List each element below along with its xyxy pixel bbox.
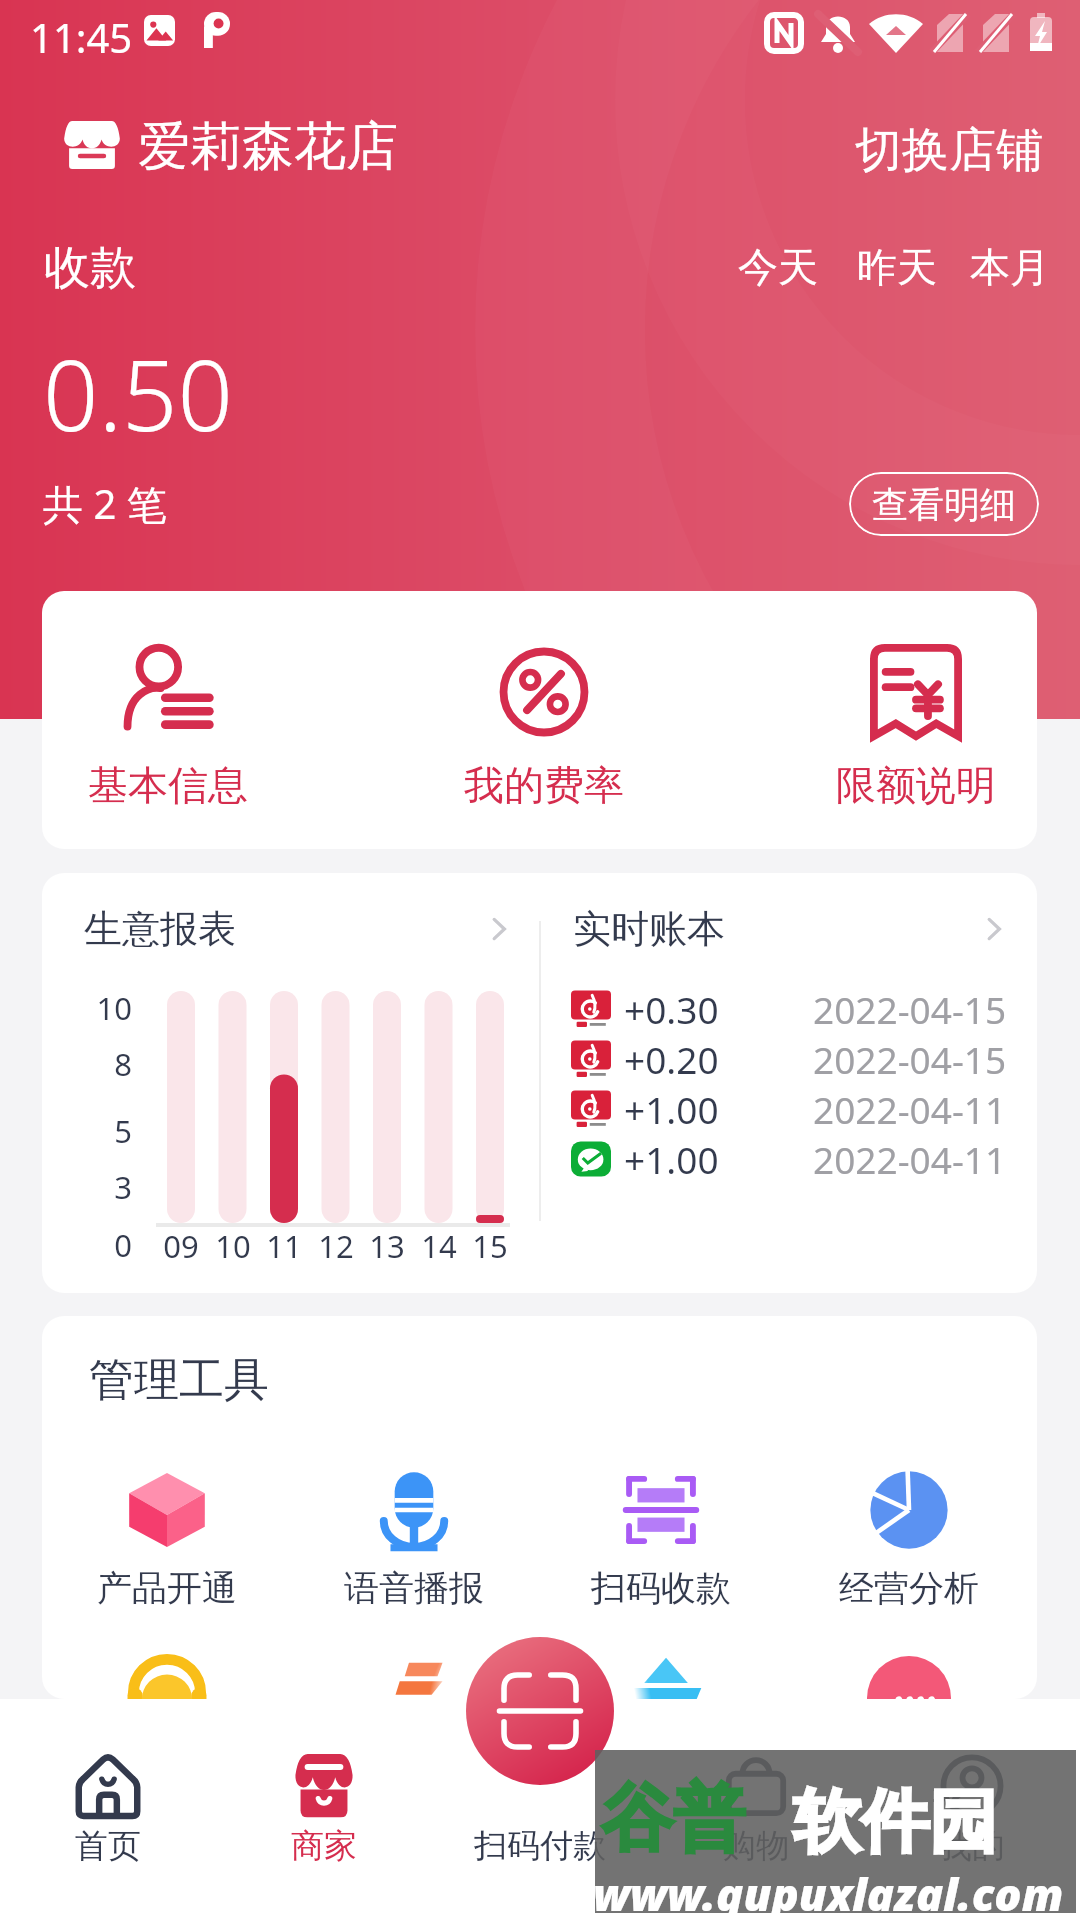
staticText: 首页 <box>75 1825 141 1867</box>
staticText: 8 <box>52 1043 132 1085</box>
staticText: 11:45 <box>30 10 133 64</box>
staticText: 本月 <box>970 242 1050 292</box>
staticText: 15 <box>450 1225 530 1267</box>
button[interactable] <box>67 1656 267 1699</box>
staticText: 管理工具 <box>89 1352 269 1409</box>
staticText: 谷普 <box>601 1774 745 1865</box>
staticText: 11 <box>244 1225 324 1267</box>
staticText: 爱莉森花店 <box>138 114 398 180</box>
staticText: 0.50 <box>43 327 233 459</box>
staticText: 10 <box>52 987 132 1029</box>
staticText: 产品开通 <box>97 1566 237 1610</box>
staticText: +0.20 <box>624 1034 719 1084</box>
button[interactable]: 我的费率 <box>414 591 674 849</box>
staticText: 查看明细 <box>872 482 1016 527</box>
staticText: 2022-04-11 <box>813 1084 1007 1134</box>
staticText: 生意报表 <box>84 905 236 953</box>
staticText: 2022-04-15 <box>813 1034 1007 1084</box>
staticText: 3 <box>52 1166 132 1208</box>
staticText: 5 <box>52 1110 132 1152</box>
staticText: 切换店铺 <box>855 121 1043 180</box>
button[interactable]: 限额说明 <box>786 591 1037 849</box>
button[interactable]: 生意报表 <box>84 905 514 953</box>
staticText: 共 2 笔 <box>43 476 167 531</box>
button[interactable]: 切换店铺 <box>855 121 1043 180</box>
staticText: 2022-04-11 <box>813 1134 1007 1184</box>
button[interactable] <box>809 1656 1009 1699</box>
staticText: 10 <box>193 1225 273 1267</box>
staticText: +0.30 <box>624 984 719 1034</box>
staticText: 昨天 <box>857 242 937 292</box>
staticText: 0 <box>52 1224 132 1266</box>
staticText: 09 <box>141 1225 221 1267</box>
button[interactable]: 经营分析 <box>809 1468 1009 1610</box>
staticText: +1.00 <box>624 1084 719 1134</box>
button[interactable]: 查看明细 <box>849 472 1039 536</box>
staticText: 扫码付款 <box>474 1825 606 1867</box>
staticText: 语音播报 <box>344 1566 484 1610</box>
button[interactable]: 扫码付款 <box>466 1637 614 1785</box>
button[interactable]: 语音播报 <box>314 1468 514 1610</box>
staticText: 我的 <box>939 1825 1005 1867</box>
button[interactable]: 产品开通 <box>67 1468 267 1610</box>
button[interactable]: 今天 <box>730 236 826 298</box>
staticText: 收款 <box>44 239 136 297</box>
staticText: 限额说明 <box>836 760 996 810</box>
button[interactable]: 购物 <box>648 1699 864 1920</box>
staticText: 实时账本 <box>573 905 725 953</box>
button[interactable]: 扫码付款 <box>432 1699 648 1920</box>
staticText: 14 <box>399 1225 479 1267</box>
staticText: 经营分析 <box>839 1566 979 1610</box>
staticText: 商家 <box>291 1825 357 1867</box>
button[interactable]: 首页 <box>0 1699 216 1920</box>
staticText: 13 <box>347 1225 427 1267</box>
staticText: 2022-04-15 <box>813 984 1007 1034</box>
staticText: 基本信息 <box>88 760 248 810</box>
button[interactable] <box>63 118 121 172</box>
staticText: www.gupuxlazal.com <box>593 1863 1064 1920</box>
staticText: 12 <box>296 1225 376 1267</box>
button[interactable]: 本月 <box>962 236 1058 298</box>
button[interactable]: 商家 <box>216 1699 432 1920</box>
button[interactable]: 基本信息 <box>42 591 298 849</box>
button[interactable]: 我的 <box>864 1699 1080 1920</box>
button[interactable]: 扫码收款 <box>561 1468 761 1610</box>
staticText: 购物 <box>723 1825 789 1867</box>
button[interactable] <box>561 1656 761 1699</box>
staticText: 软件园 <box>793 1780 997 1866</box>
staticText: 我的费率 <box>464 760 624 810</box>
button[interactable] <box>314 1656 514 1699</box>
staticText: 今天 <box>738 242 818 292</box>
staticText: 扫码收款 <box>591 1566 731 1610</box>
button[interactable]: 昨天 <box>849 236 945 298</box>
staticText: +1.00 <box>624 1134 719 1184</box>
button[interactable]: 实时账本 <box>573 905 1009 953</box>
